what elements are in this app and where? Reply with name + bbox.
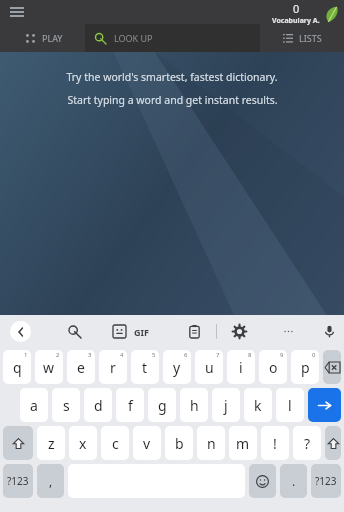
button[interactable]: b: [165, 426, 193, 460]
button[interactable]: j: [212, 388, 240, 422]
button[interactable]: ?123: [311, 464, 341, 498]
button[interactable]: Emoji: [249, 464, 276, 498]
staticText: r: [110, 358, 116, 377]
staticText: p: [301, 358, 310, 377]
button[interactable]: u: [195, 350, 223, 384]
button[interactable]: Search: [62, 315, 86, 348]
button[interactable]: c: [101, 426, 129, 460]
staticText: g: [158, 396, 167, 415]
staticText: Try the world's smartest, fastest dictio…: [66, 70, 278, 84]
button[interactable]: q: [3, 350, 31, 384]
staticText: f: [128, 396, 133, 415]
staticText: Start typing a word and get instant resu…: [67, 93, 278, 107]
staticText: e: [77, 358, 85, 377]
staticText: LISTS: [299, 32, 322, 44]
button[interactable]: ?123: [3, 464, 33, 498]
staticText: GIF: [134, 326, 149, 338]
staticText: 4: [120, 351, 124, 359]
button[interactable]: Voice input: [317, 315, 341, 348]
staticText: s: [63, 396, 70, 415]
staticText: b: [175, 434, 184, 453]
button[interactable]: ,: [37, 464, 64, 498]
staticText: 1: [24, 351, 28, 359]
staticText: Vocabulary A.: [272, 16, 320, 26]
button[interactable]: Shift: [3, 426, 33, 460]
button[interactable]: Back: [10, 321, 31, 342]
staticText: 6: [184, 351, 188, 359]
button[interactable]: 0: [272, 1, 341, 26]
staticText: t: [142, 358, 148, 377]
button[interactable]: p: [291, 350, 319, 384]
staticText: u: [205, 358, 214, 377]
button[interactable]: PLAY: [0, 24, 85, 52]
staticText: n: [207, 434, 216, 453]
staticText: w: [43, 358, 55, 377]
button[interactable]: Menu: [0, 0, 34, 24]
staticText: 0: [293, 1, 300, 16]
staticText: PLAY: [42, 32, 63, 44]
staticText: ?123: [315, 474, 337, 488]
staticText: z: [48, 434, 55, 453]
button[interactable]: GIF: [134, 326, 149, 338]
button[interactable]: n: [197, 426, 225, 460]
button[interactable]: More options: [276, 315, 300, 348]
button[interactable]: d: [84, 388, 112, 422]
staticText: x: [79, 434, 87, 453]
staticText: y: [173, 358, 181, 377]
button[interactable]: h: [180, 388, 208, 422]
staticText: !: [273, 434, 277, 453]
staticText: 3: [88, 351, 92, 359]
button[interactable]: !: [261, 426, 289, 460]
button[interactable]: g: [148, 388, 176, 422]
button[interactable]: r: [99, 350, 127, 384]
button[interactable]: o: [259, 350, 287, 384]
button[interactable]: z: [37, 426, 65, 460]
staticText: 0: [312, 351, 316, 359]
button[interactable]: Enter: [308, 388, 341, 422]
button[interactable]: m: [229, 426, 257, 460]
button[interactable]: LISTS: [260, 24, 344, 52]
staticText: 5: [152, 351, 156, 359]
staticText: LOOK UP: [114, 32, 153, 44]
staticText: k: [254, 396, 262, 415]
button[interactable]: Backspace: [323, 350, 341, 384]
button[interactable]: x: [69, 426, 97, 460]
staticText: ?123: [7, 474, 29, 488]
staticText: d: [94, 396, 103, 415]
button[interactable]: s: [52, 388, 80, 422]
staticText: 2: [56, 351, 60, 359]
staticText: ,: [49, 473, 53, 489]
button[interactable]: l: [276, 388, 304, 422]
staticText: q: [13, 358, 22, 377]
staticText: m: [236, 434, 250, 453]
staticText: i: [239, 358, 243, 377]
staticText: 7: [216, 351, 220, 359]
staticText: ?: [304, 434, 311, 453]
button[interactable]: f: [116, 388, 144, 422]
button[interactable]: Shift: [325, 426, 341, 460]
staticText: 8: [248, 351, 252, 359]
button[interactable]: Clipboard: [182, 315, 206, 348]
staticText: v: [143, 434, 151, 453]
button[interactable]: i: [227, 350, 255, 384]
button[interactable]: .: [280, 464, 307, 498]
staticText: l: [288, 396, 292, 415]
button[interactable]: t: [131, 350, 159, 384]
staticText: .: [292, 473, 296, 489]
button[interactable]: v: [133, 426, 161, 460]
button[interactable]: e: [67, 350, 95, 384]
staticText: j: [224, 396, 228, 415]
button[interactable]: y: [163, 350, 191, 384]
staticText: o: [269, 358, 278, 377]
staticText: a: [30, 396, 38, 415]
button[interactable]: w: [35, 350, 63, 384]
button[interactable]: ?: [293, 426, 321, 460]
staticText: c: [112, 434, 119, 453]
button[interactable]: a: [20, 388, 48, 422]
staticText: 9: [280, 351, 284, 359]
button[interactable]: Stickers: [107, 315, 131, 348]
button[interactable]: LOOK UP: [85, 24, 260, 52]
button[interactable]: k: [244, 388, 272, 422]
button[interactable]: Settings: [227, 315, 251, 348]
